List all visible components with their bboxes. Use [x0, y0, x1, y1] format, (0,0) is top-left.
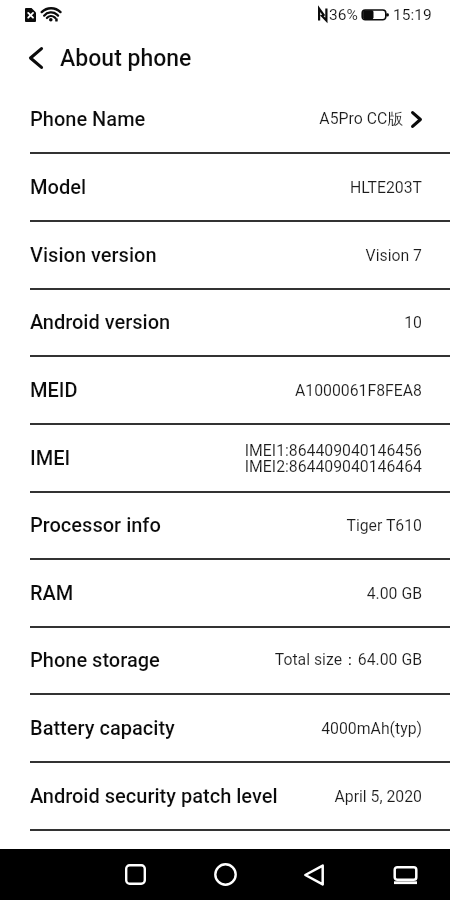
staticText: 10: [404, 313, 422, 332]
staticText: 4000mAh(typ): [321, 719, 422, 738]
staticText: Vision version: [30, 243, 157, 266]
staticText: Vision 7: [365, 246, 422, 265]
staticText: Android security patch level: [30, 784, 278, 807]
staticText: HLTE203T: [349, 178, 422, 197]
staticText: 4.00 GB: [366, 584, 422, 603]
staticText: Android version: [30, 310, 171, 333]
button[interactable]: IMEI: [0, 424, 450, 492]
button[interactable]: Screenshot: [380, 849, 430, 900]
button[interactable]: MEID: [0, 356, 450, 424]
button[interactable]: Back: [289, 849, 339, 900]
button[interactable]: Recents: [110, 849, 160, 900]
staticText: 36%: [329, 6, 358, 24]
button[interactable]: RAM: [0, 559, 450, 627]
button[interactable]: Phone storage: [0, 626, 450, 694]
staticText: MEID: [30, 378, 78, 401]
button[interactable]: Back: [16, 38, 56, 78]
button[interactable]: Home: [200, 849, 250, 900]
staticText: IMEI1:864409040146456 IMEI2:864409040146…: [244, 441, 422, 476]
staticText: IMEI: [30, 446, 71, 469]
button[interactable]: Phone Name: [0, 85, 450, 153]
staticText: A1000061F8FEA8: [295, 381, 422, 400]
staticText: Tiger T610: [346, 516, 422, 535]
staticText: April 5, 2020: [334, 787, 422, 806]
staticText: Model: [30, 175, 87, 198]
staticText: Phone storage: [30, 648, 160, 671]
button[interactable]: Battery capacity: [0, 694, 450, 762]
staticText: 15:19: [393, 6, 432, 24]
button[interactable]: Android version: [0, 288, 450, 356]
button[interactable]: Processor info: [0, 491, 450, 559]
staticText: Processor info: [30, 513, 161, 536]
staticText: A5Pro CC版: [319, 109, 403, 129]
staticText: Phone Name: [30, 107, 146, 130]
button[interactable]: Vision version: [0, 221, 450, 289]
staticText: Total size：64.00 GB: [274, 650, 422, 670]
button[interactable]: Android security patch level: [0, 762, 450, 830]
staticText: Battery capacity: [30, 716, 175, 739]
staticText: About phone: [60, 45, 192, 72]
button[interactable]: Model: [0, 153, 450, 221]
staticText: RAM: [30, 581, 74, 604]
